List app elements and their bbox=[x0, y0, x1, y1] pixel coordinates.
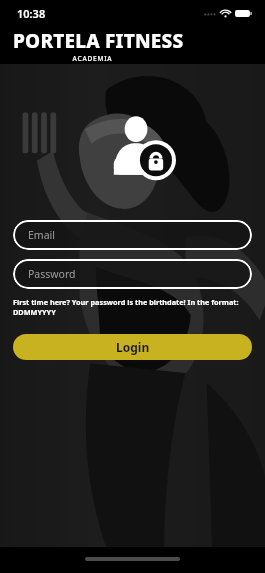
staticText: Email bbox=[28, 228, 55, 242]
staticText: First time here? Your password is the bi… bbox=[13, 297, 252, 317]
staticText: PORTELA FITNESS bbox=[13, 28, 184, 54]
staticText: Password bbox=[28, 267, 76, 281]
staticText: 10:38 bbox=[17, 6, 46, 21]
button[interactable]: Email bbox=[13, 220, 252, 250]
button[interactable]: Login bbox=[13, 334, 252, 360]
staticText: ACADEMIA bbox=[13, 54, 172, 63]
button[interactable]: Password bbox=[13, 259, 252, 289]
staticText: Login bbox=[116, 339, 150, 355]
